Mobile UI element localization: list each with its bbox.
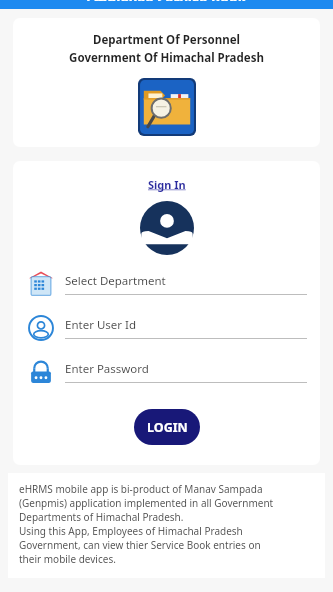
staticText: eHRMS mobile app is bi-product of Manav … [19, 482, 263, 496]
staticText: Departments of Himachal Pradesh. [19, 510, 184, 524]
staticText: LOGIN [147, 419, 188, 436]
other: Service Book [138, 78, 196, 136]
button[interactable]: Enter Password [25, 357, 307, 387]
staticText: Select Department [65, 273, 166, 289]
staticText: Using this App, Employees of Himachal Pr… [19, 524, 243, 538]
staticText: Government Of Himachal Pradesh [69, 50, 264, 66]
other: User avatar [140, 201, 194, 255]
staticText: (Genpmis) application implemented in all… [19, 496, 274, 510]
button[interactable]: Sign In [148, 177, 186, 192]
staticText: Employee Service Book [86, 0, 247, 1]
staticText: Enter User Id [65, 317, 136, 333]
staticText: Enter Password [65, 361, 149, 377]
staticText: Sign In [148, 177, 186, 192]
button[interactable]: Enter User Id [25, 313, 307, 343]
button[interactable]: Select Department [25, 269, 307, 299]
staticText: their mobile devices. [19, 552, 116, 566]
staticText: Department Of Personnel [93, 32, 240, 48]
staticText: Government, can view thier Service Book … [19, 538, 261, 552]
button[interactable]: LOGIN [134, 409, 200, 445]
